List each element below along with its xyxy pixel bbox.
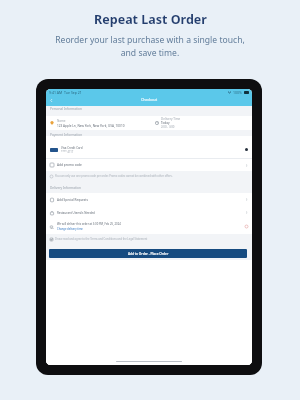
staticText: Repeat Last Order [94,11,207,28]
button[interactable]: Name [46,116,252,130]
staticText: 100% [233,90,242,95]
staticText: Checkout [141,97,158,102]
staticText: 9:41 AM Tue Sep 21 [49,90,82,95]
button[interactable]: Back [48,97,55,104]
staticText: Personal Information [50,107,82,111]
button[interactable]: I have read and agree to the Terms and C… [50,237,148,241]
staticText: **** 4117 [61,150,74,154]
button[interactable]: Add promo code [46,159,252,171]
button[interactable]: We will deliver this order at 3:00 PM, F… [46,219,252,234]
staticText: Add Special Requests [57,198,88,202]
staticText: Name [57,119,66,123]
staticText: Restaurant Utensils Needed [57,211,95,215]
button[interactable]: Restaurant Utensils Needed [46,206,252,219]
staticText: Today [161,121,170,125]
staticText: Payment Information [50,133,83,137]
staticText: 123 Apple Ln, New York, New York, USA, 1… [57,124,125,128]
staticText: You can only use one promo code per orde… [55,174,173,178]
staticText: 2:00 - 3:00 [161,125,175,129]
staticText: Delivery Time [161,117,181,121]
staticText: I have read and agree to the Terms and C… [55,237,148,241]
button[interactable]: Add to Order - Place Order [49,249,247,258]
button[interactable]: Add Special Requests [46,193,252,206]
staticText: Delivery Information [50,186,81,190]
staticText: Change delivery time [57,227,83,231]
staticText: Visa Credit Card [61,146,83,150]
button[interactable]: Visa Credit Card [46,141,252,158]
staticText: Reorder your last purchase with a single… [55,34,245,58]
staticText: Add promo code [57,163,82,167]
staticText: Add to Order - Place Order [128,252,169,256]
staticText: We will deliver this order at 3:00 PM, F… [57,222,121,226]
